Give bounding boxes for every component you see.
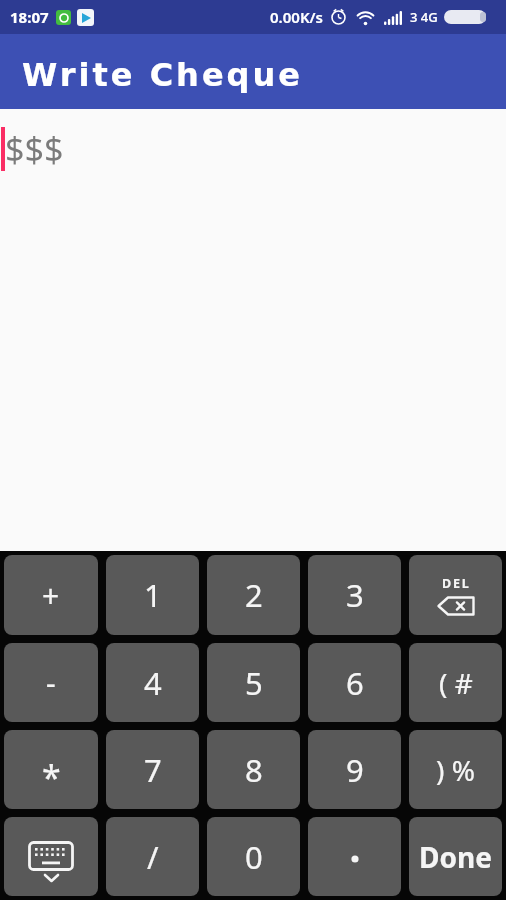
staticText: 2 [245, 574, 263, 616]
staticText: Write Cheque [22, 56, 303, 93]
staticText: 0.00K/s [270, 7, 323, 27]
button[interactable] [4, 817, 98, 896]
button[interactable]: Done [409, 817, 502, 896]
button[interactable]: 1 [106, 555, 199, 635]
button[interactable]: 9 [308, 730, 401, 809]
staticText: 8 [245, 749, 263, 791]
staticText: 6 [346, 662, 364, 704]
staticText: ) % [436, 751, 475, 789]
button[interactable]: ( # [409, 643, 502, 722]
staticText: + [42, 575, 60, 616]
staticText: 3 [346, 574, 364, 616]
staticText: 4 [144, 662, 162, 704]
button[interactable]: * [4, 730, 98, 809]
staticText: 7 [144, 749, 162, 791]
staticText: ( # [439, 664, 473, 702]
button[interactable] [308, 817, 401, 896]
button[interactable]: 4 [106, 643, 199, 722]
button[interactable]: 2 [207, 555, 300, 635]
button[interactable]: 0 [207, 817, 300, 896]
staticText: / [147, 836, 159, 878]
staticText: * [42, 754, 61, 800]
staticText: 0 [245, 836, 263, 878]
staticText: 18:07 [10, 7, 49, 27]
button[interactable]: / [106, 817, 199, 896]
staticText: Done [419, 838, 492, 876]
button[interactable]: ) % [409, 730, 502, 809]
button[interactable]: 8 [207, 730, 300, 809]
button[interactable]: 3 [308, 555, 401, 635]
staticText: 3 4G [410, 8, 438, 26]
button[interactable]: + [4, 555, 98, 635]
button[interactable]: DEL [409, 555, 502, 635]
staticText: 1 [144, 574, 162, 616]
staticText: $$$ [5, 126, 64, 172]
button[interactable]: 7 [106, 730, 199, 809]
button[interactable]: 5 [207, 643, 300, 722]
button[interactable]: - [4, 643, 98, 722]
staticText: 9 [346, 749, 364, 791]
button[interactable]: 6 [308, 643, 401, 722]
staticText: 5 [245, 662, 263, 704]
staticText: - [46, 662, 56, 703]
staticText: DEL [442, 575, 471, 592]
